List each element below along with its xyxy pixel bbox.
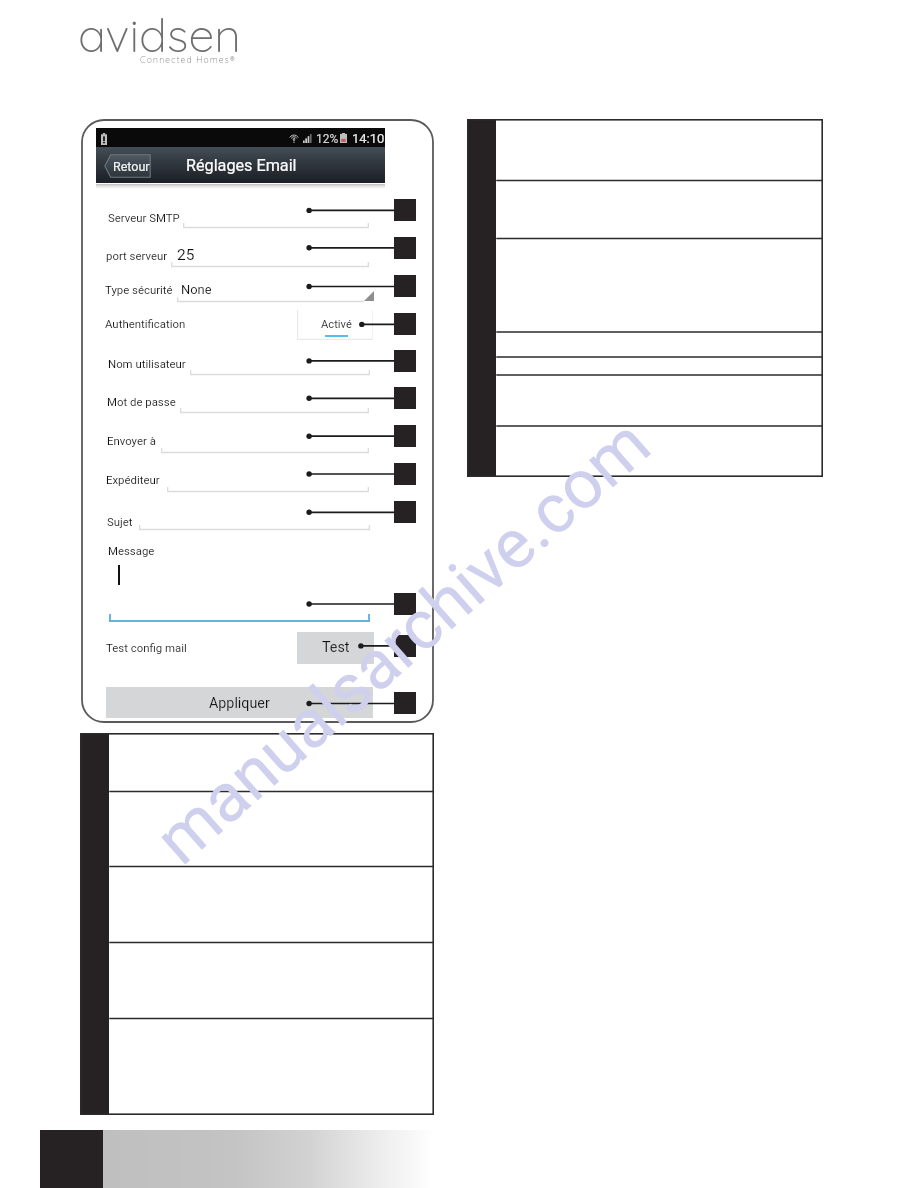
staticText: Expéditeur — [106, 473, 160, 486]
staticText: Message — [108, 544, 155, 557]
other: Battery low — [101, 133, 107, 145]
staticText: Retour — [113, 159, 150, 174]
staticText: None — [181, 282, 212, 297]
staticText: Test — [322, 639, 350, 656]
staticText: Nom utilisateur — [108, 357, 186, 370]
staticText: avidsen — [78, 5, 241, 63]
staticText: Serveur SMTP — [108, 211, 180, 224]
staticText: 12% — [316, 132, 339, 146]
button[interactable] — [106, 687, 373, 718]
staticText: Envoyer à — [107, 434, 156, 447]
staticText: Mot de passe — [107, 395, 176, 408]
staticText: Sujet — [107, 515, 133, 528]
staticText: Type sécurité — [105, 283, 173, 296]
staticText: 25 — [177, 246, 195, 264]
staticText: manualsarchive.com — [140, 403, 666, 880]
staticText: Connected Homes® — [140, 54, 236, 65]
staticText: port serveur — [106, 249, 168, 262]
staticText: Réglages Email — [186, 156, 297, 175]
button[interactable] — [297, 632, 374, 664]
button[interactable] — [104, 154, 151, 178]
staticText: Appliquer — [209, 695, 270, 712]
staticText: Authentification — [105, 317, 186, 330]
staticText: Activé — [321, 318, 352, 331]
staticText: Test config mail — [106, 641, 187, 654]
button[interactable] — [297, 310, 373, 340]
staticText: 14:10 — [352, 131, 385, 146]
